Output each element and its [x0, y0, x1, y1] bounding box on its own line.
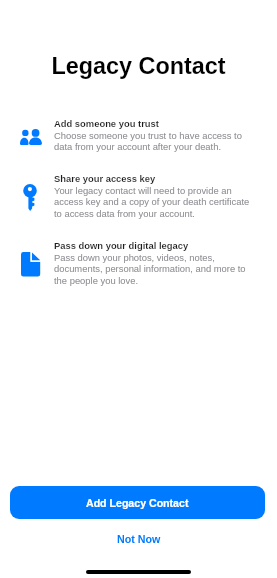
staticText: Not Now	[117, 533, 161, 545]
staticText: Add someone you trust	[54, 118, 159, 129]
staticText: Add Legacy Contact	[86, 497, 189, 509]
staticText: Pass down your photos, videos, notes, do…	[54, 252, 255, 286]
staticText: Share your access key	[54, 173, 156, 184]
other: Document	[21, 252, 57, 277]
button[interactable]: Two people	[0, 118, 277, 152]
button[interactable]: Access key	[0, 173, 277, 219]
staticText: Choose someone you trust to have access …	[54, 130, 255, 152]
staticText: Your legacy contact will need to provide…	[54, 185, 255, 219]
other: Two people	[20, 129, 56, 146]
button[interactable]: Not Now	[0, 519, 277, 549]
staticText: Pass down your digital legacy	[54, 240, 189, 251]
button[interactable]: Document	[0, 240, 277, 286]
button[interactable]: Add Legacy Contact	[10, 486, 265, 519]
other: Access key	[23, 184, 59, 212]
staticText: Legacy Contact	[0, 53, 277, 79]
